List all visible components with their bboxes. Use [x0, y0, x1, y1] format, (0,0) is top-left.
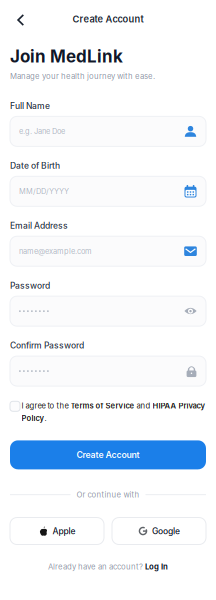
staticText: Log In — [145, 562, 168, 571]
staticText: name@example.com — [19, 247, 92, 256]
button[interactable]: MM/DD/YYYY — [10, 176, 206, 206]
staticText: I agree to the Terms of Service and HIPA… — [21, 401, 205, 423]
staticText: Or continue with — [76, 490, 139, 499]
staticText: Confirm Password — [10, 340, 84, 351]
staticText: Already have an account? — [48, 562, 145, 571]
button[interactable] — [10, 296, 206, 326]
button[interactable]: e.g. Jane Doe — [10, 116, 206, 146]
staticText: Create Account — [76, 449, 139, 460]
button[interactable]: Google — [112, 517, 206, 544]
staticText: Apple — [52, 526, 75, 536]
staticText: Date of Birth — [10, 161, 60, 171]
button[interactable]: Apple — [10, 517, 104, 544]
staticText: e.g. Jane Doe — [19, 127, 65, 136]
button[interactable] — [10, 356, 206, 386]
button[interactable]: Back — [0, 6, 35, 32]
staticText: Join MedLink — [10, 46, 123, 66]
button[interactable]: name@example.com — [10, 236, 206, 266]
button[interactable]: Create Account — [10, 440, 206, 469]
button[interactable]: I agree to the Terms of Service and HIPA… — [10, 401, 205, 423]
staticText: Create Account — [72, 13, 143, 25]
button[interactable]: Already have an account? — [10, 562, 206, 571]
staticText: Password — [10, 280, 50, 291]
staticText: Google — [152, 526, 180, 536]
staticText: MM/DD/YYYY — [19, 187, 69, 196]
staticText: Full Name — [10, 101, 50, 111]
staticText: Manage your health journey with ease. — [10, 71, 155, 81]
staticText: Email Address — [10, 220, 68, 231]
